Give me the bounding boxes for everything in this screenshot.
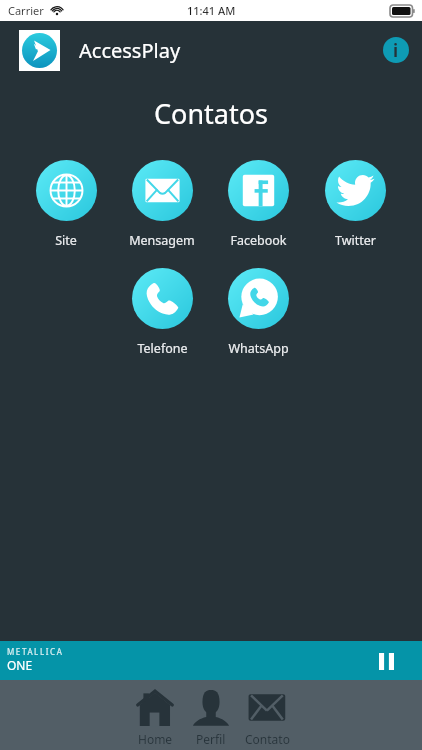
staticText: Carrier	[8, 3, 44, 18]
button[interactable]: Perfil	[183, 680, 239, 747]
staticText: Home	[138, 731, 173, 747]
button[interactable]: Pause	[374, 649, 398, 673]
staticText: Contato	[245, 731, 290, 747]
button[interactable]: Contato	[239, 680, 295, 747]
staticText: WhatsApp	[228, 340, 289, 357]
staticText: Twitter	[335, 232, 376, 249]
button[interactable]: Twitter	[307, 160, 404, 249]
button[interactable]: Telefone	[114, 268, 210, 357]
staticText: 11:41 AM	[187, 3, 236, 18]
staticText: Contatos	[0, 95, 422, 132]
staticText: Mensagem	[129, 232, 195, 249]
staticText: METALLICA	[7, 646, 64, 657]
button[interactable]	[19, 30, 60, 71]
button[interactable]: METALLICA	[0, 641, 422, 680]
staticText: i	[393, 39, 399, 62]
button[interactable]: Facebook	[210, 160, 307, 249]
button[interactable]: Home	[127, 680, 183, 747]
staticText: Facebook	[230, 232, 287, 249]
button[interactable]: WhatsApp	[210, 268, 307, 357]
button[interactable]: Mensagem	[114, 160, 210, 249]
button[interactable]: Information	[383, 37, 409, 63]
staticText: AccessPlay	[79, 37, 181, 64]
button[interactable]: Site	[18, 160, 114, 249]
staticText: Site	[55, 232, 77, 249]
staticText: Telefone	[137, 340, 188, 357]
staticText: ONE	[7, 657, 33, 673]
staticText: Perfil	[196, 731, 226, 747]
